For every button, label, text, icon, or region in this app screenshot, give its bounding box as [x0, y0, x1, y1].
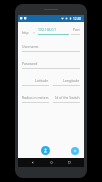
staticText: Longitude [63, 78, 80, 83]
button[interactable]: Back [29, 159, 36, 166]
button[interactable]: Home [48, 159, 55, 166]
button[interactable]: Recents [66, 159, 73, 166]
button[interactable]: Password [22, 61, 80, 69]
button[interactable]: 192.168.0.1 [38, 27, 69, 35]
button[interactable]: Radius in meters [22, 95, 49, 103]
button[interactable]: Port [71, 27, 80, 35]
button[interactable]: Protocol http [22, 30, 35, 35]
staticText: http [22, 30, 29, 35]
button[interactable]: Username [22, 44, 80, 52]
staticText: Radius in meters [22, 95, 49, 100]
button[interactable]: Account [41, 146, 50, 155]
staticText: 12:30 [73, 17, 82, 21]
button[interactable]: Add [71, 147, 79, 155]
button[interactable]: Latitude [22, 78, 49, 86]
staticText: Username [22, 44, 39, 49]
button[interactable]: Id of the Switch [53, 95, 80, 103]
staticText: Port [73, 27, 80, 32]
staticText: 192.168.0.1 [38, 27, 57, 32]
button[interactable]: Longitude [53, 78, 80, 86]
staticText: Latitude [35, 78, 49, 83]
staticText: Id of the Switch [55, 95, 80, 100]
staticText: Password [22, 61, 38, 66]
